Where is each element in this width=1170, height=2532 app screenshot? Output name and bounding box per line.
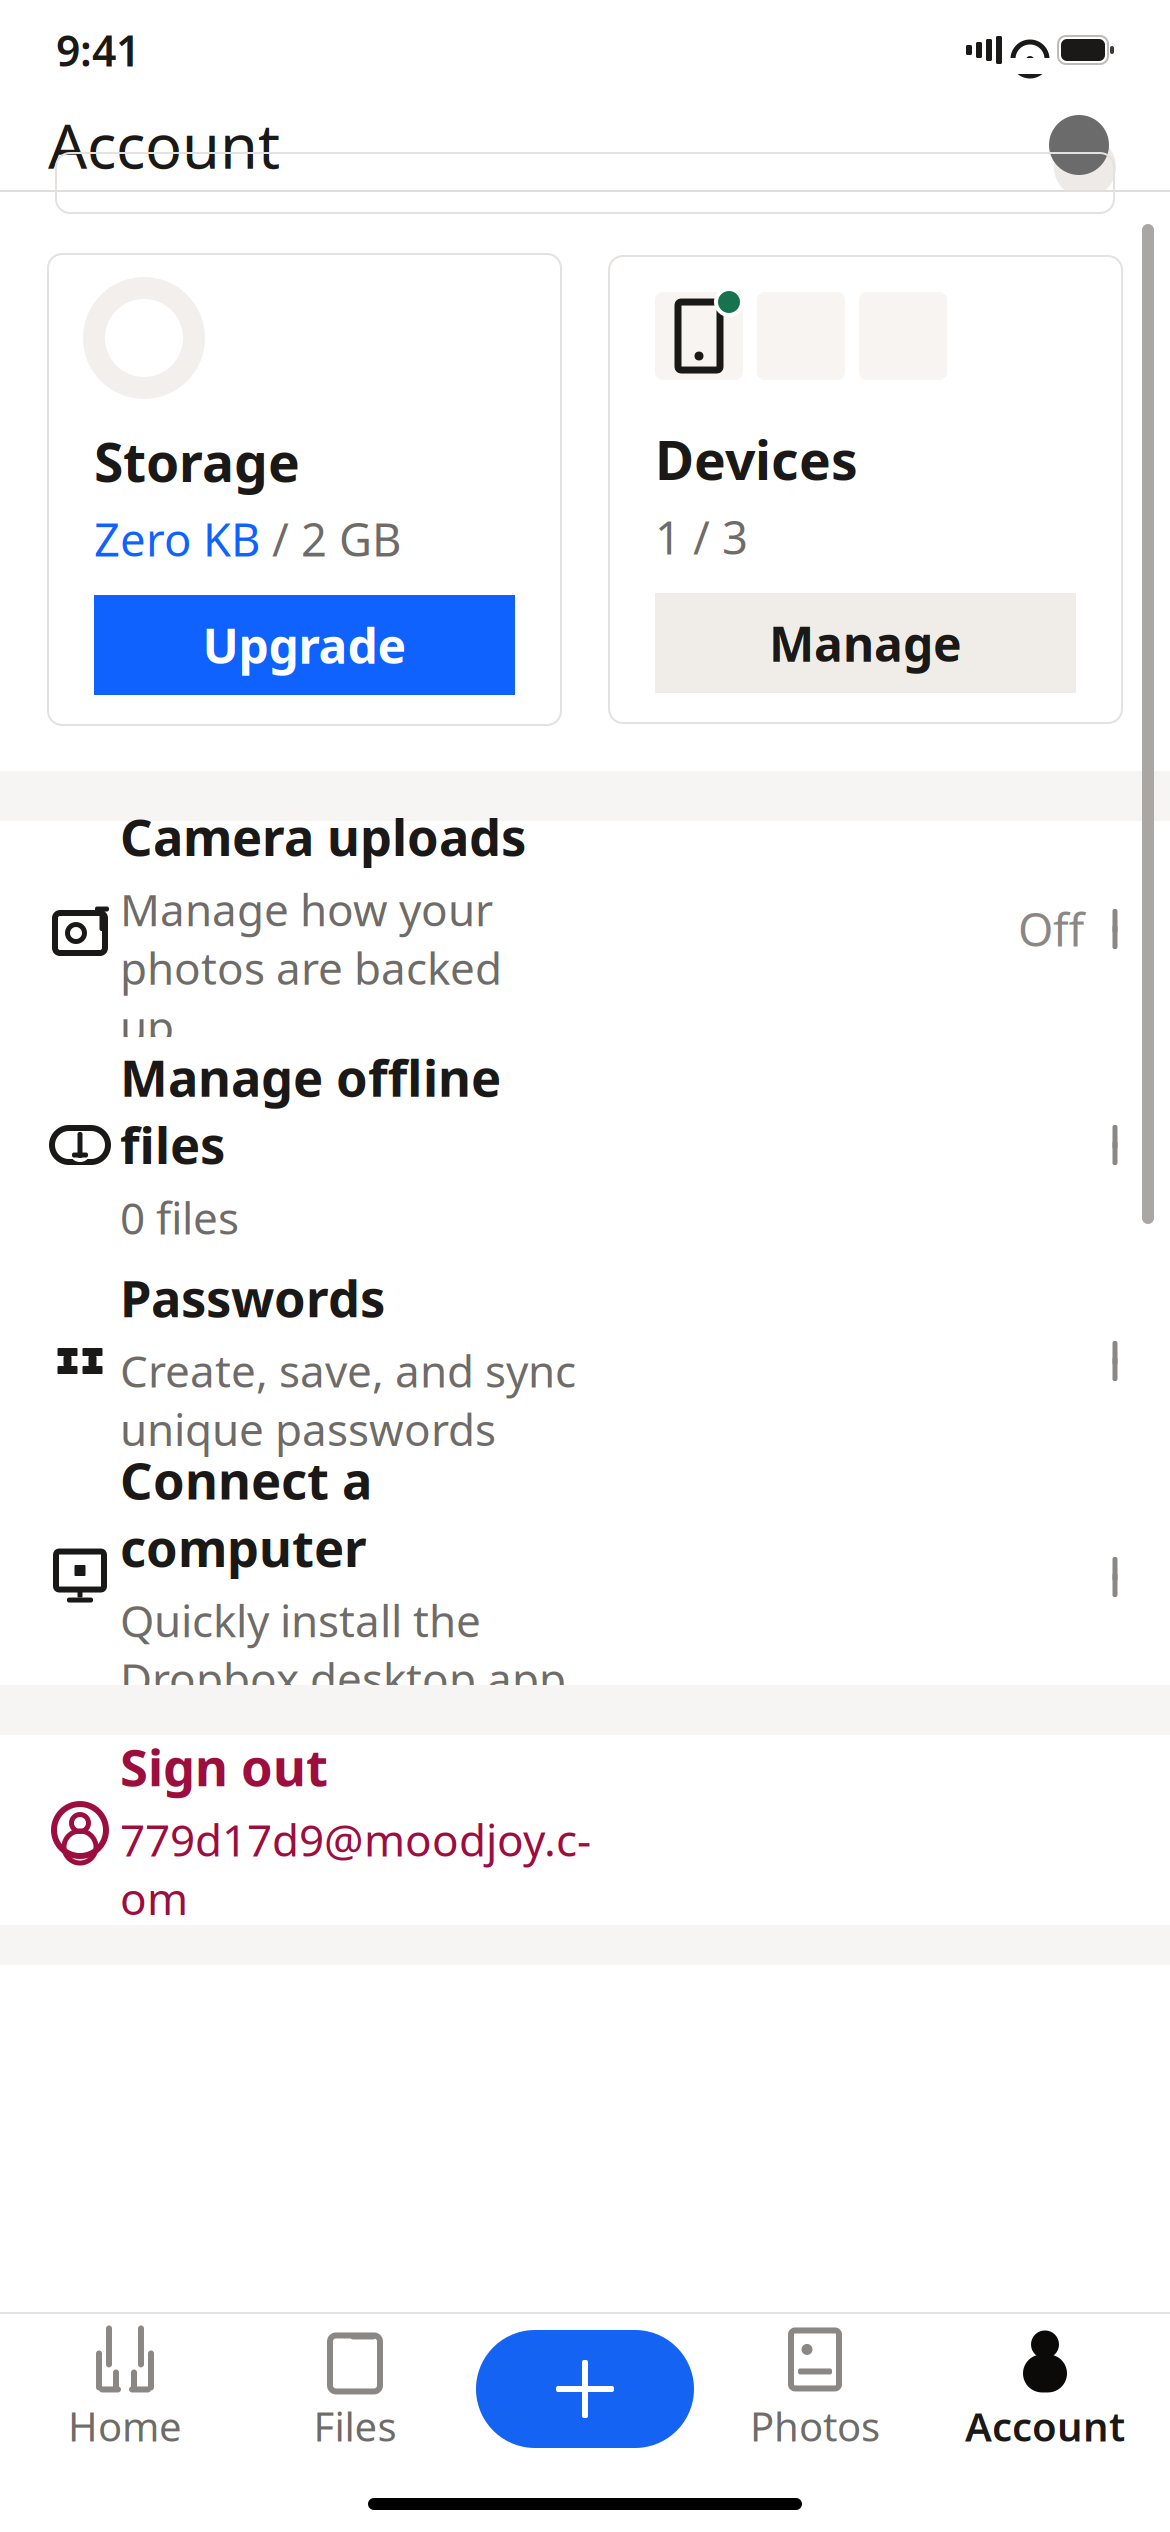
- staticText: 779d17d9@moodjoy.com: [120, 1810, 591, 1927]
- staticText: Connect a computer: [120, 1446, 372, 1581]
- staticText: / 2 GB: [260, 509, 401, 569]
- button[interactable]: Connect a computer: [0, 1469, 1170, 1685]
- staticText: Zero KB: [94, 509, 260, 569]
- staticText: Quickly install the Dropbox desktop app: [120, 1591, 566, 1708]
- button[interactable]: Manage offline files: [0, 1037, 1170, 1253]
- staticText: Home: [68, 2399, 182, 2452]
- staticText: 0 files: [120, 1188, 239, 1246]
- button[interactable]: Sign out: [0, 1735, 1170, 1925]
- staticText: Account: [965, 2399, 1125, 2452]
- staticText: Sign out: [120, 1733, 328, 1800]
- button[interactable]: Passwords: [0, 1253, 1170, 1469]
- button[interactable]: Files: [240, 2314, 470, 2464]
- staticText: Photos: [750, 2399, 880, 2452]
- button[interactable]: Camera uploads: [0, 821, 1170, 1037]
- staticText: Manage offline files: [120, 1043, 501, 1178]
- staticText: Off: [1018, 899, 1084, 959]
- button[interactable]: Storage: [48, 254, 561, 725]
- staticText: Manage: [769, 611, 962, 675]
- button[interactable]: Home: [10, 2314, 240, 2464]
- button[interactable]: Create: [470, 2314, 700, 2464]
- staticText: Storage: [94, 426, 300, 497]
- button[interactable]: Profile and settings: [1036, 102, 1122, 188]
- staticText: Manage how your photos are backed up: [120, 880, 502, 1055]
- staticText: Create, save, and sync unique passwords: [120, 1341, 576, 1458]
- staticText: Files: [313, 2399, 396, 2452]
- staticText: Account: [48, 104, 280, 186]
- staticText: 9:41: [56, 22, 140, 78]
- button[interactable]: Account: [930, 2314, 1160, 2464]
- staticText: 1 / 3: [655, 507, 748, 567]
- button[interactable]: Photos: [700, 2314, 930, 2464]
- staticText: Camera uploads: [120, 803, 526, 870]
- staticText: Devices: [655, 424, 858, 495]
- staticText: Upgrade: [202, 613, 406, 677]
- staticText: Passwords: [120, 1264, 385, 1331]
- button[interactable]: Devices: [609, 256, 1122, 723]
